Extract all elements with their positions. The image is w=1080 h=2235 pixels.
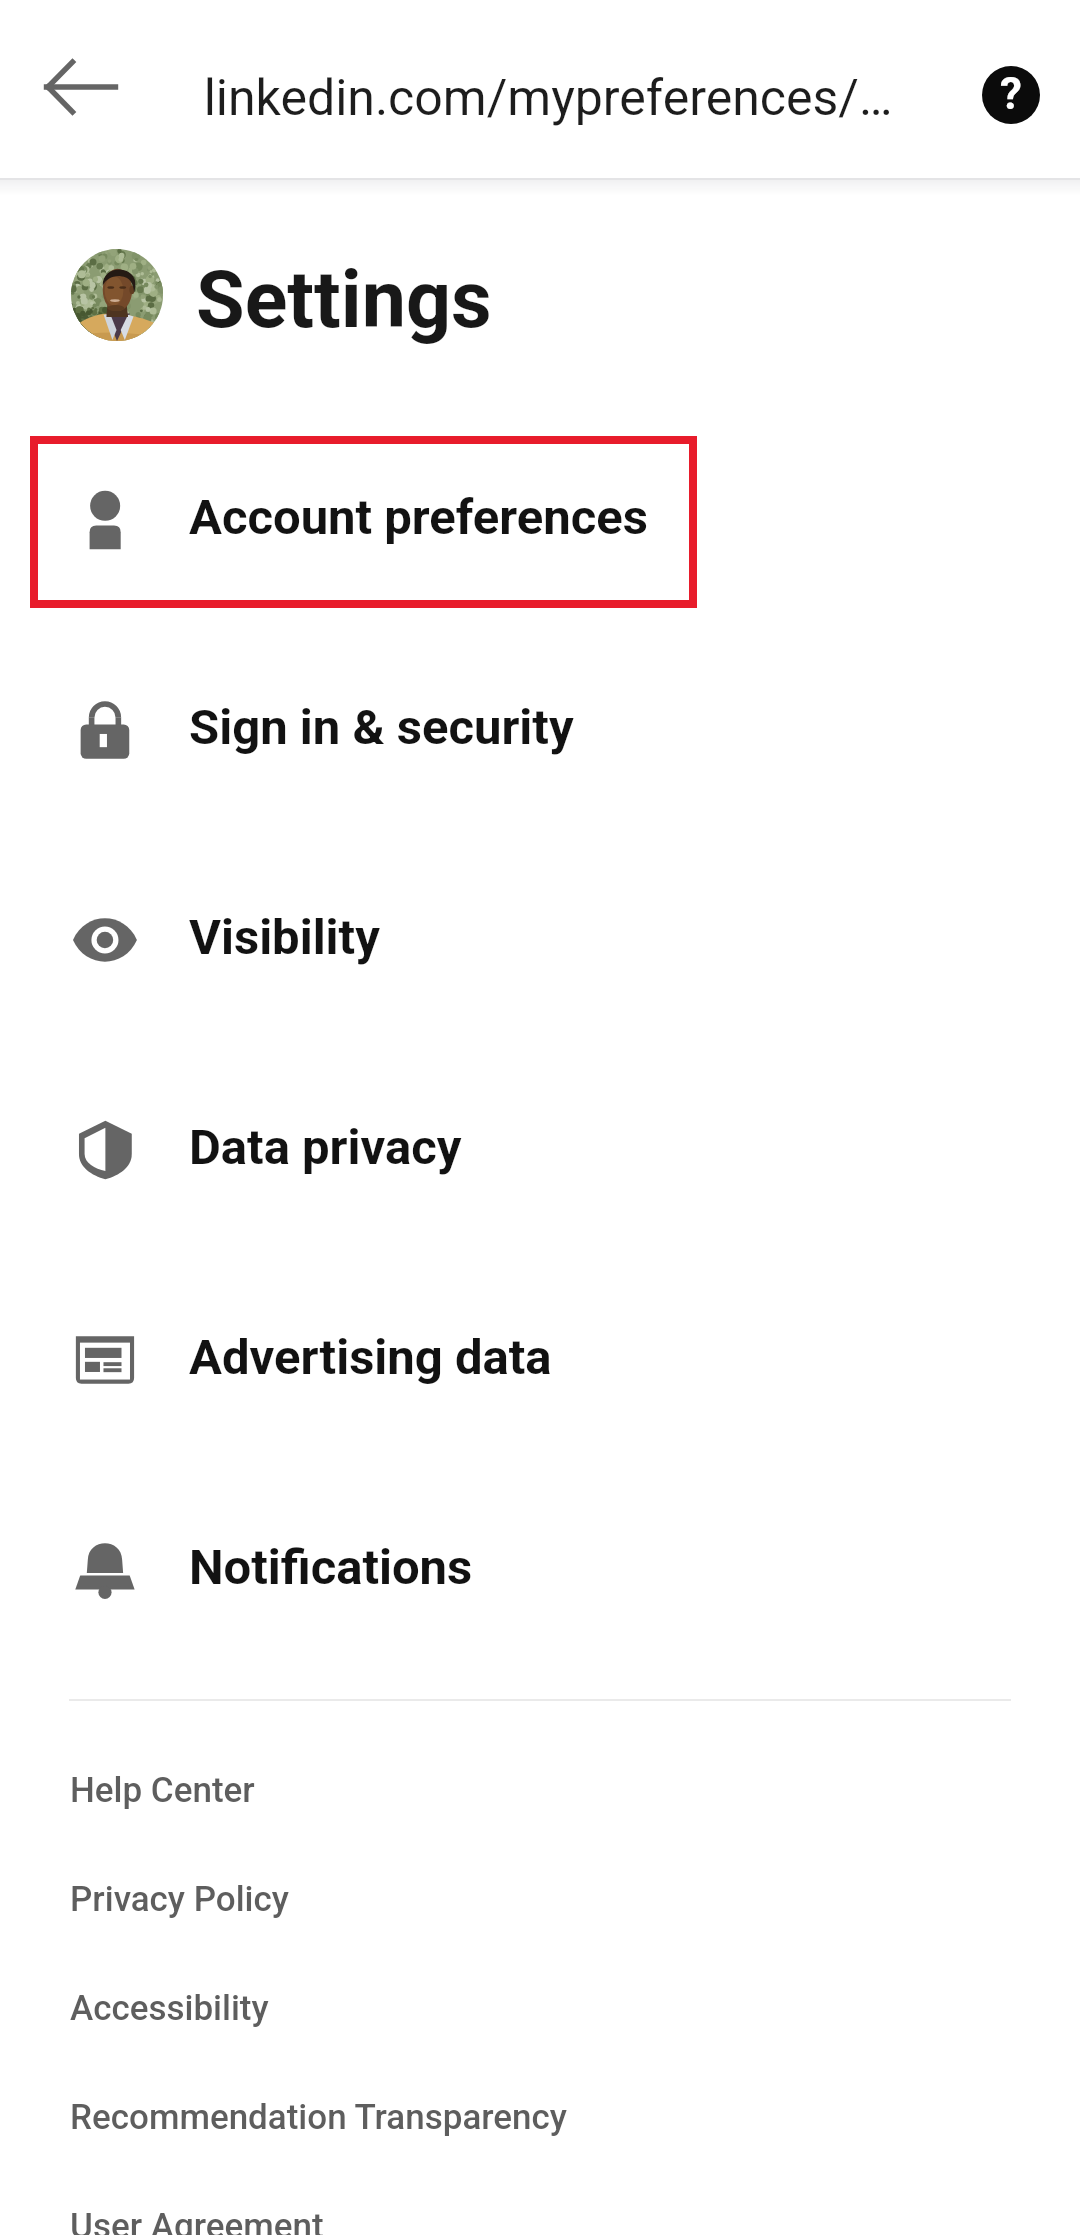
- button[interactable]: Sign in & security: [0, 623, 1080, 833]
- button[interactable]: Advertising data: [0, 1253, 1080, 1463]
- button[interactable]: Visibility: [0, 833, 1080, 1043]
- button[interactable]: Back: [22, 28, 140, 146]
- staticText: Help Center: [70, 1770, 255, 1811]
- staticText: Recommendation Transparency: [70, 2097, 567, 2138]
- staticText: Accessibility: [70, 1988, 269, 2029]
- button[interactable]: Notifications: [0, 1463, 1080, 1673]
- staticText: ?: [1000, 68, 1022, 120]
- button[interactable]: Help Center: [0, 1736, 1080, 1845]
- staticText: Sign in & security: [189, 699, 574, 756]
- button[interactable]: Recommendation Transparency: [0, 2063, 1080, 2172]
- staticText: Data privacy: [189, 1119, 462, 1176]
- button[interactable]: Accessibility: [0, 1954, 1080, 2063]
- button[interactable]: User Agreement: [0, 2172, 1080, 2235]
- button[interactable]: Help: [951, 36, 1071, 156]
- staticText: User Agreement: [70, 2206, 324, 2235]
- staticText: Account preferences: [189, 489, 648, 546]
- staticText: Settings: [196, 254, 492, 347]
- staticText: linkedin.com/mypreferences/…: [8, 69, 1080, 128]
- staticText: Privacy Policy: [70, 1879, 289, 1920]
- button[interactable]: Data privacy: [0, 1043, 1080, 1253]
- staticText: Advertising data: [189, 1329, 552, 1386]
- staticText: Notifications: [189, 1539, 473, 1596]
- button[interactable]: Account preferences: [0, 413, 1080, 623]
- button[interactable]: Privacy Policy: [0, 1845, 1080, 1954]
- staticText: Visibility: [189, 909, 380, 966]
